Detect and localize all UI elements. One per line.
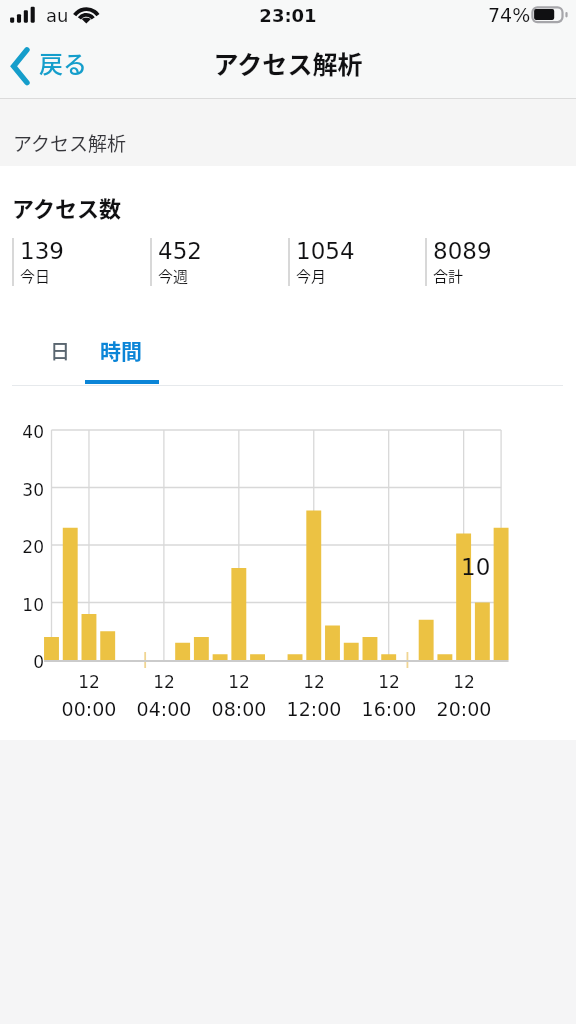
staticText: 12 bbox=[194, 672, 284, 692]
staticText: 今週 bbox=[158, 265, 189, 287]
staticText: 23:01 bbox=[0, 5, 576, 26]
staticText: 04:00 bbox=[119, 698, 209, 720]
staticText: 12 bbox=[119, 672, 209, 692]
staticText: 12 bbox=[344, 672, 434, 692]
staticText: 30 bbox=[0, 480, 44, 500]
staticText: 8089 bbox=[433, 238, 492, 265]
staticText: 今日 bbox=[20, 265, 51, 287]
staticText: 時間 bbox=[100, 335, 142, 365]
staticText: アクセス解析 bbox=[13, 129, 127, 157]
staticText: 日 bbox=[50, 336, 70, 365]
button[interactable]: 日 bbox=[35, 320, 85, 384]
staticText: 合計 bbox=[433, 265, 464, 287]
staticText: 00:00 bbox=[44, 698, 134, 720]
staticText: 452 bbox=[158, 238, 202, 265]
staticText: 10 bbox=[0, 595, 44, 615]
button[interactable]: 時間 bbox=[85, 320, 159, 384]
staticText: 今月 bbox=[296, 265, 327, 287]
staticText: 20 bbox=[0, 537, 44, 557]
button[interactable]: Back bbox=[0, 39, 96, 93]
staticText: 139 bbox=[20, 238, 64, 265]
staticText: 16:00 bbox=[344, 698, 434, 720]
staticText: 戻る bbox=[39, 45, 87, 80]
staticText: アクセス解析 bbox=[0, 45, 576, 81]
staticText: 74% bbox=[488, 4, 531, 26]
staticText: 0 bbox=[0, 652, 44, 672]
staticText: 12:00 bbox=[269, 698, 359, 720]
other: Back bbox=[9, 47, 31, 85]
staticText: 20:00 bbox=[419, 698, 509, 720]
staticText: 08:00 bbox=[194, 698, 284, 720]
staticText: アクセス数 bbox=[12, 191, 121, 223]
staticText: 12 bbox=[269, 672, 359, 692]
staticText: 10 bbox=[461, 554, 491, 581]
staticText: 40 bbox=[0, 422, 44, 442]
staticText: au bbox=[46, 5, 69, 26]
staticText: 12 bbox=[419, 672, 509, 692]
staticText: 1054 bbox=[296, 238, 355, 265]
staticText: 12 bbox=[44, 672, 134, 692]
